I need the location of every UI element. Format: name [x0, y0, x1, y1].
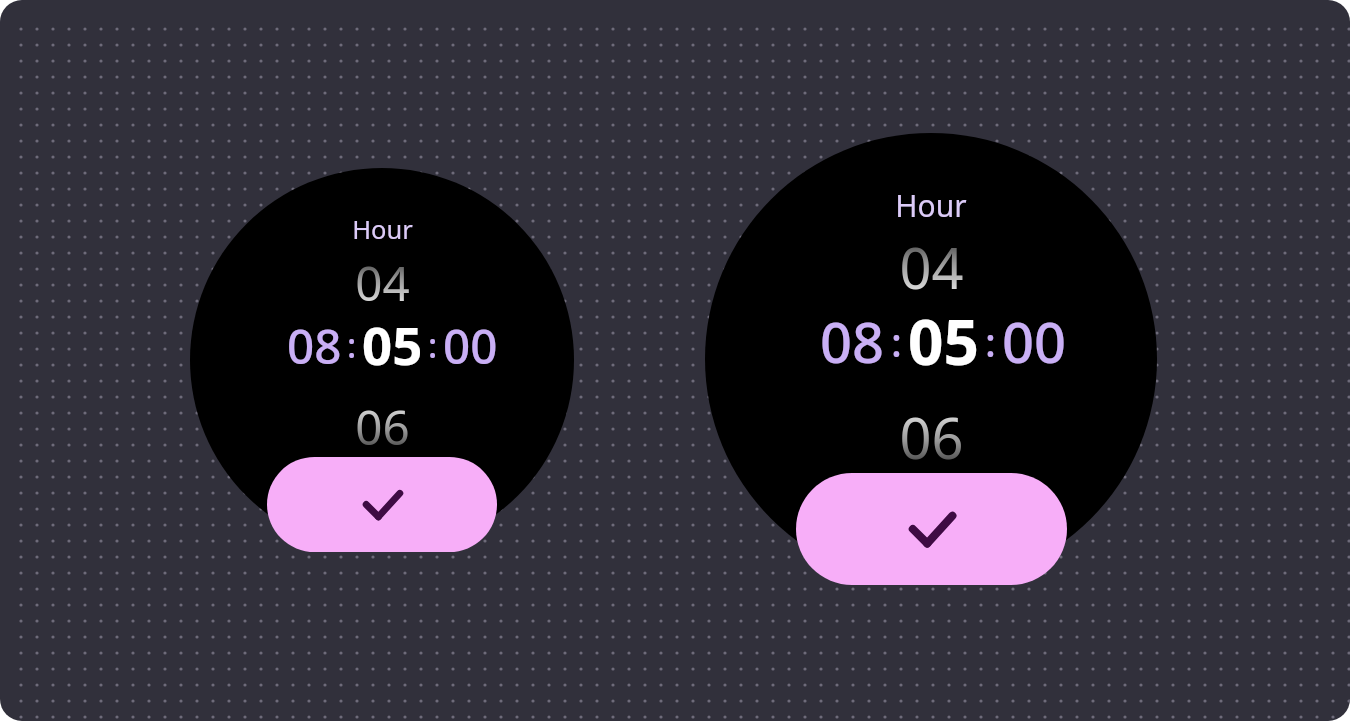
button[interactable]: Confirm [796, 473, 1067, 585]
button[interactable]: 04 [355, 250, 410, 315]
button[interactable]: Confirm [267, 457, 497, 552]
button[interactable]: 06 [355, 394, 410, 459]
button[interactable]: 04 [899, 229, 964, 305]
button[interactable]: 06 [899, 399, 964, 475]
button[interactable]: 05 [908, 299, 979, 383]
button[interactable]: 08 [820, 303, 885, 379]
staticText: : [891, 314, 902, 368]
staticText: Hour [352, 212, 413, 247]
staticText: : [985, 314, 996, 368]
button[interactable]: 08 [287, 313, 342, 378]
staticText: : [347, 322, 357, 368]
button[interactable]: 00 [1002, 303, 1067, 379]
button[interactable]: 00 [443, 313, 498, 378]
staticText: Hour [895, 185, 967, 226]
button[interactable]: 05 [362, 309, 423, 381]
staticText: : [428, 322, 438, 368]
